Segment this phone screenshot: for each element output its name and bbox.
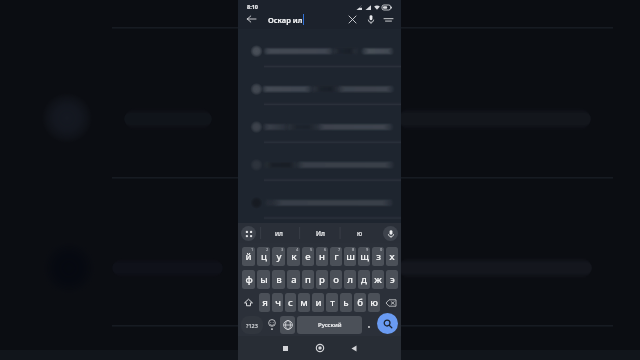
button[interactable]: р <box>316 270 328 289</box>
button[interactable]: Change keyboard <box>280 316 295 334</box>
staticText: 8 <box>352 247 355 252</box>
staticText: ?123 <box>246 322 258 329</box>
staticText: й <box>245 250 252 263</box>
button[interactable]: Voice search <box>362 11 379 28</box>
button[interactable]: ф <box>242 270 255 289</box>
button[interactable]: п <box>302 270 314 289</box>
staticText: ю <box>357 229 363 238</box>
button[interactable]: Voice input <box>383 226 398 241</box>
staticText: 9 <box>366 247 369 252</box>
button[interactable]: ил <box>260 223 298 243</box>
button[interactable]: е <box>302 247 314 266</box>
staticText: н <box>319 250 325 263</box>
staticText: ю <box>370 296 378 309</box>
button[interactable]: Ил <box>301 223 339 243</box>
button[interactable]: ж <box>372 270 384 289</box>
button[interactable]: ю <box>368 293 380 312</box>
staticText: ц <box>261 250 267 263</box>
button[interactable]: с <box>285 293 296 312</box>
button[interactable]: Back <box>242 10 260 28</box>
staticText: я <box>262 296 268 309</box>
staticText: м <box>300 296 308 309</box>
button[interactable]: ш <box>344 247 356 266</box>
staticText: г <box>334 250 339 263</box>
button[interactable]: ч <box>272 293 283 312</box>
button[interactable]: Search <box>377 313 398 334</box>
button[interactable]: ю <box>341 223 379 243</box>
staticText: в <box>276 273 282 286</box>
button[interactable]: ь <box>340 293 352 312</box>
button[interactable]: Clear <box>344 11 361 28</box>
staticText: Русский <box>318 321 342 329</box>
button[interactable]: з <box>372 247 384 266</box>
staticText: л <box>347 273 353 286</box>
button[interactable]: ы <box>257 270 270 289</box>
staticText: а <box>291 273 297 286</box>
staticText: 0 <box>380 247 383 252</box>
staticText: д <box>361 273 367 286</box>
button[interactable]: Filter <box>380 11 397 28</box>
staticText: Оскар ил <box>268 15 303 25</box>
staticText: и <box>315 296 322 309</box>
staticText: ж <box>374 273 382 286</box>
staticText: р <box>319 273 325 286</box>
staticText: ф <box>245 273 253 286</box>
button[interactable]: а <box>287 270 300 289</box>
button[interactable]: ?123 <box>241 316 263 334</box>
staticText: 5 <box>310 247 313 252</box>
staticText: ил <box>275 229 283 238</box>
staticText: о <box>333 273 339 286</box>
staticText: ь <box>343 296 349 309</box>
button[interactable]: н <box>316 247 328 266</box>
button[interactable]: й <box>242 247 255 266</box>
button[interactable]: б <box>354 293 366 312</box>
button[interactable]: Back <box>346 340 362 356</box>
button[interactable]: г <box>330 247 342 266</box>
button[interactable]: Русский <box>297 316 362 334</box>
button[interactable]: м <box>298 293 310 312</box>
staticText: х <box>389 250 395 263</box>
button[interactable]: э <box>386 270 398 289</box>
button[interactable]: Home <box>312 340 328 356</box>
staticText: 7 <box>338 247 341 252</box>
staticText: ш <box>346 250 355 263</box>
button[interactable]: Shift <box>240 293 257 312</box>
staticText: 4 <box>296 247 299 252</box>
button[interactable]: Backspace <box>382 293 399 312</box>
staticText: э <box>390 273 395 286</box>
button[interactable]: в <box>272 270 285 289</box>
button[interactable]: о <box>330 270 342 289</box>
staticText: 6 <box>324 247 327 252</box>
button[interactable]: Period <box>362 316 376 334</box>
button[interactable]: и <box>312 293 324 312</box>
staticText: 3 <box>281 247 284 252</box>
button[interactable]: х <box>386 247 398 266</box>
staticText: у <box>276 250 282 263</box>
staticText: п <box>305 273 311 286</box>
button[interactable]: к <box>287 247 300 266</box>
button[interactable]: Toolbar <box>241 226 256 241</box>
staticText: ы <box>260 273 268 286</box>
staticText: 1 <box>251 247 254 252</box>
staticText: щ <box>360 250 369 263</box>
button[interactable]: у <box>272 247 285 266</box>
staticText: е <box>305 250 311 263</box>
staticText: Ил <box>316 229 325 238</box>
staticText: т <box>330 296 335 309</box>
staticText: з <box>376 250 381 263</box>
staticText: 8:10 <box>247 3 258 10</box>
button[interactable]: Recents <box>277 340 293 356</box>
staticText: б <box>357 296 363 309</box>
button[interactable]: ц <box>257 247 270 266</box>
button[interactable]: я <box>259 293 270 312</box>
button[interactable]: Emoji <box>267 316 277 334</box>
staticText: с <box>288 296 293 309</box>
staticText: к <box>291 250 297 263</box>
staticText: 2 <box>266 247 269 252</box>
button[interactable]: д <box>358 270 370 289</box>
button[interactable]: л <box>344 270 356 289</box>
staticText: ч <box>275 296 281 309</box>
button[interactable]: т <box>326 293 338 312</box>
button[interactable]: щ <box>358 247 370 266</box>
